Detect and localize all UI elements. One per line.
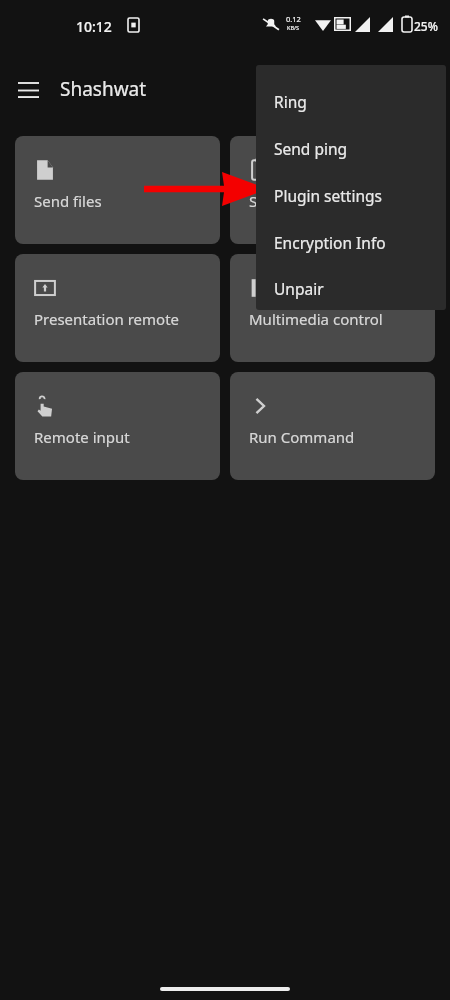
staticText: Remote input	[34, 427, 130, 447]
button[interactable]: Presentation remote	[15, 254, 220, 362]
staticText: Unpair	[274, 278, 324, 299]
staticText: Plugin settings	[274, 185, 382, 206]
button[interactable]: Share a tab	[230, 136, 435, 244]
button[interactable]: Remote input	[15, 372, 220, 480]
button[interactable]: Run Command	[230, 372, 435, 480]
staticText: KB/S	[287, 24, 300, 31]
button[interactable]: Multimedia control	[230, 254, 435, 362]
staticText: 0.12	[286, 14, 301, 24]
staticText: 25%	[414, 18, 438, 34]
staticText: Run Command	[249, 427, 355, 447]
button[interactable]: Unpair	[256, 266, 446, 310]
button[interactable]: Open navigation drawer	[10, 72, 46, 108]
staticText: Ring	[274, 91, 307, 112]
button[interactable]: Ring	[256, 78, 446, 125]
staticText: Share a tab	[249, 191, 329, 211]
staticText: 10:12	[76, 17, 112, 36]
staticText: Send ping	[274, 138, 348, 159]
button[interactable]: Send ping	[256, 125, 446, 172]
staticText: Send files	[34, 191, 102, 211]
button[interactable]: Send files	[15, 136, 220, 244]
button[interactable]: Encryption Info	[256, 219, 446, 266]
button[interactable]: Plugin settings	[256, 172, 446, 219]
staticText: Encryption Info	[274, 232, 386, 253]
staticText: Presentation remote	[34, 309, 180, 329]
staticText: Multimedia control	[249, 309, 383, 329]
staticText: Shashwat	[60, 76, 147, 102]
